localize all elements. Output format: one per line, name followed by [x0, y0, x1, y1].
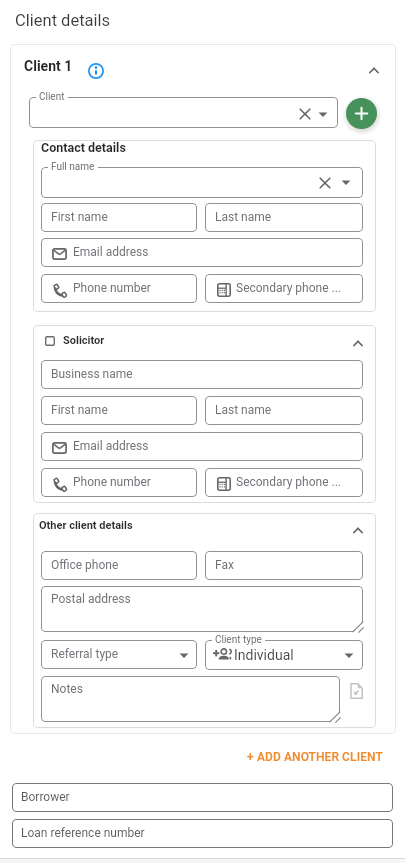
staticText: Contact details — [41, 140, 126, 155]
staticText: + ADD ANOTHER CLIENT — [247, 750, 383, 764]
button[interactable] — [45, 336, 55, 346]
staticText: Solicitor — [63, 334, 105, 347]
staticText: Business name — [51, 367, 133, 381]
staticText: Individual — [234, 647, 294, 663]
button[interactable] — [12, 819, 393, 848]
button[interactable] — [205, 468, 363, 497]
staticText: Client details — [15, 11, 111, 30]
button[interactable] — [33, 140, 376, 312]
staticText: Full name — [51, 161, 95, 173]
staticText: Client type — [215, 634, 262, 646]
staticText: Email address — [73, 245, 149, 259]
staticText: Client — [39, 91, 65, 103]
button[interactable] — [41, 468, 197, 497]
staticText: Secondary phone ... — [236, 475, 342, 489]
staticText: Loan reference number — [21, 826, 145, 840]
button[interactable] — [41, 203, 197, 232]
staticText: Last name — [215, 403, 272, 417]
button[interactable] — [353, 340, 363, 347]
button[interactable] — [41, 360, 363, 389]
staticText: Secondary phone ... — [236, 281, 342, 295]
staticText: Client 1 — [24, 58, 73, 74]
button[interactable] — [350, 683, 363, 699]
button[interactable] — [205, 551, 363, 580]
button[interactable]: + ADD ANOTHER CLIENT — [0, 750, 383, 764]
staticText: First name — [51, 403, 108, 417]
button[interactable] — [205, 640, 363, 670]
staticText: Notes — [51, 682, 83, 696]
button[interactable] — [353, 527, 363, 534]
staticText: Phone number — [73, 281, 151, 295]
staticText: Fax — [215, 558, 234, 572]
staticText: Referral type — [51, 647, 119, 661]
button[interactable] — [205, 396, 363, 425]
button[interactable] — [88, 63, 104, 79]
button[interactable] — [12, 783, 393, 812]
button[interactable] — [205, 274, 363, 303]
staticText: First name — [51, 210, 108, 224]
button[interactable] — [41, 238, 363, 267]
button[interactable] — [41, 167, 363, 198]
button[interactable] — [41, 586, 363, 632]
staticText: Postal address — [51, 592, 131, 606]
button[interactable] — [369, 67, 379, 74]
staticText: Office phone — [51, 558, 119, 572]
staticText: Phone number — [73, 475, 151, 489]
button[interactable] — [33, 325, 376, 503]
button[interactable] — [29, 97, 338, 128]
button[interactable] — [41, 676, 340, 722]
staticText: Other client details — [39, 519, 133, 532]
staticText: Borrower — [21, 790, 70, 804]
staticText: Last name — [215, 210, 272, 224]
button[interactable] — [41, 396, 197, 425]
staticText: Email address — [73, 439, 149, 453]
button[interactable] — [41, 640, 197, 669]
button[interactable] — [41, 274, 197, 303]
button[interactable] — [346, 98, 377, 129]
button[interactable] — [41, 551, 197, 580]
button[interactable] — [41, 432, 363, 461]
button[interactable] — [205, 203, 363, 232]
button[interactable] — [33, 513, 376, 728]
